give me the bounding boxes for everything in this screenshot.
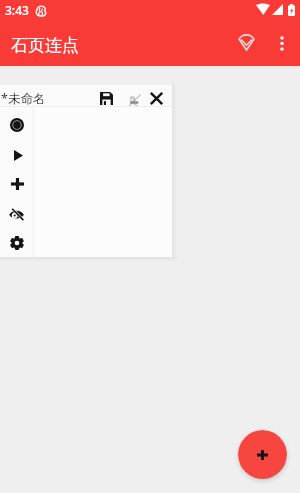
staticText: 3:43 bbox=[5, 2, 29, 18]
button[interactable]: More options bbox=[260, 24, 300, 64]
button[interactable]: Add bbox=[4, 171, 30, 197]
button[interactable]: Save bbox=[95, 87, 117, 109]
button[interactable]: Close bbox=[145, 87, 167, 109]
button[interactable]: Add macro bbox=[238, 430, 287, 479]
button[interactable]: Script bbox=[121, 87, 144, 110]
button[interactable]: Premium bbox=[224, 21, 269, 66]
button[interactable]: Record bbox=[4, 112, 30, 138]
staticText: *未命名 bbox=[1, 90, 46, 107]
button[interactable]: Settings bbox=[4, 230, 30, 256]
button[interactable]: Hide bbox=[4, 201, 30, 227]
staticText: 石页连点 bbox=[11, 35, 79, 56]
button[interactable]: Play bbox=[4, 142, 30, 168]
